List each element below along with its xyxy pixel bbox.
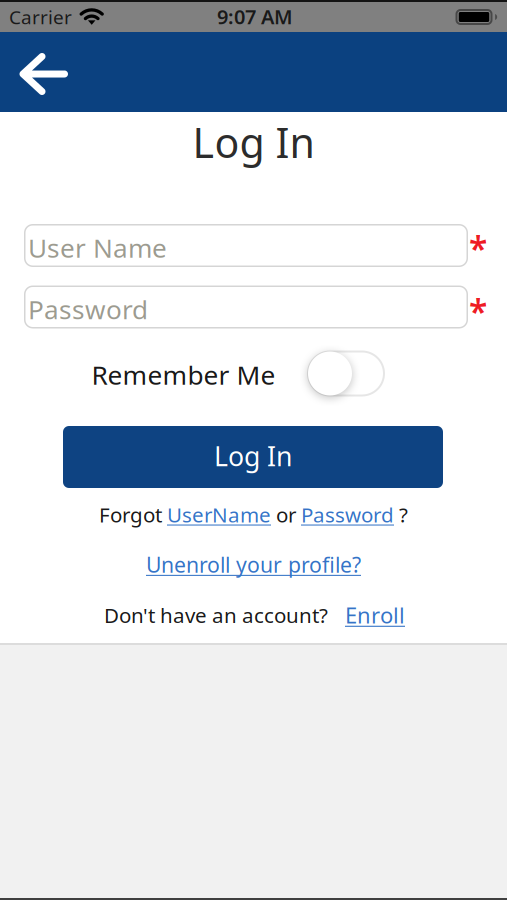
button[interactable]: Remember Me bbox=[307, 350, 385, 396]
button[interactable]: UserName bbox=[167, 501, 271, 528]
staticText: * bbox=[469, 226, 487, 270]
staticText: Password bbox=[301, 501, 394, 528]
button[interactable]: Enroll bbox=[345, 600, 405, 630]
staticText: Log In bbox=[192, 115, 314, 169]
staticText: * bbox=[469, 289, 487, 333]
staticText: Remember Me bbox=[91, 357, 275, 392]
staticText: ? bbox=[394, 501, 408, 528]
staticText: Carrier bbox=[9, 4, 72, 29]
button[interactable]: Back bbox=[19, 54, 67, 94]
staticText: or bbox=[271, 501, 301, 528]
staticText: Unenroll your profile? bbox=[146, 550, 361, 579]
staticText: Forgot bbox=[99, 501, 167, 528]
staticText: Password bbox=[28, 292, 148, 326]
staticText: User Name bbox=[28, 230, 167, 265]
button[interactable]: Password bbox=[301, 501, 394, 528]
textField[interactable]: Password bbox=[28, 292, 468, 326]
staticText: Don't have an account? bbox=[104, 601, 328, 629]
staticText: Enroll bbox=[345, 600, 405, 630]
staticText: 9:07 AM bbox=[217, 3, 293, 30]
button[interactable]: Unenroll your profile? bbox=[146, 550, 361, 579]
staticText: Log In bbox=[214, 438, 292, 474]
textField[interactable]: User Name bbox=[28, 230, 468, 265]
button[interactable]: Log In bbox=[63, 426, 443, 488]
staticText: UserName bbox=[167, 501, 271, 528]
